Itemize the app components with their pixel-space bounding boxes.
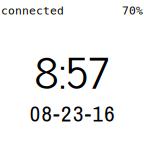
staticText: 70% <box>122 4 143 17</box>
staticText: connected <box>1 4 64 17</box>
staticText: 8:57 <box>34 35 108 105</box>
staticText: 08-23-16 <box>30 98 114 128</box>
